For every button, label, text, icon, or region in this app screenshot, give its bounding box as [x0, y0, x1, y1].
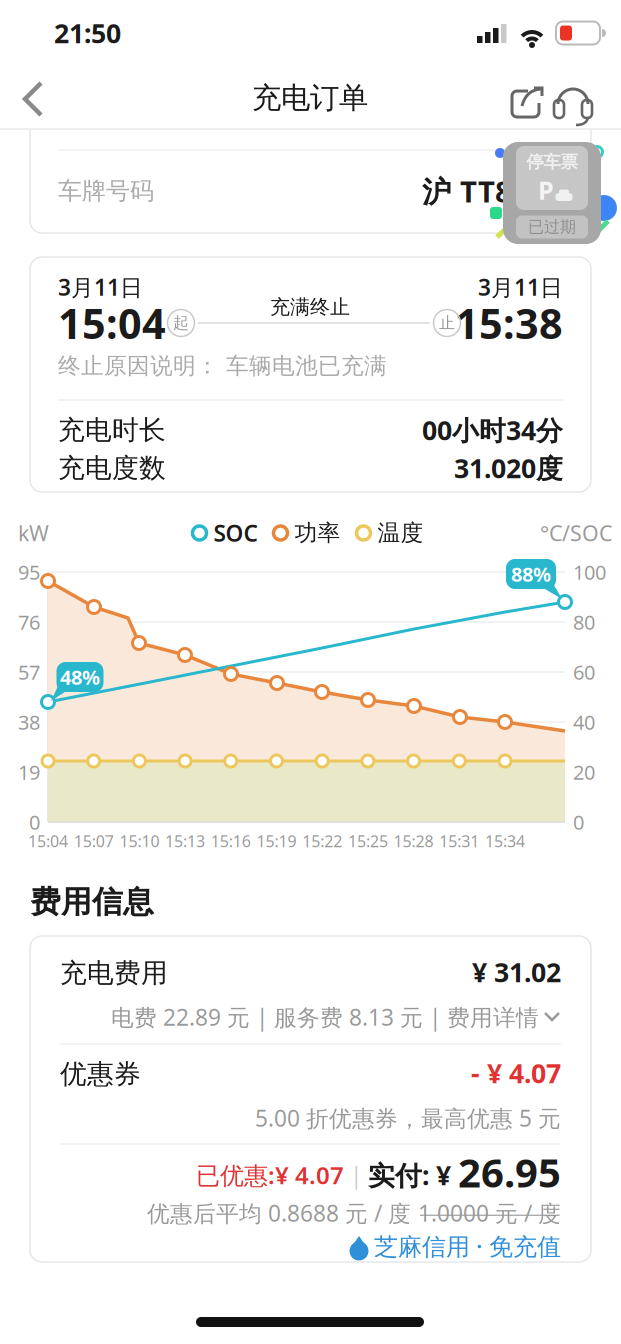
staticText: 80 — [573, 609, 595, 635]
staticText: P — [538, 173, 554, 207]
staticText: 温度 — [377, 519, 423, 547]
staticText: 充电度数 — [58, 452, 166, 484]
staticText: 0 — [573, 809, 584, 835]
button[interactable] — [3, 69, 63, 129]
staticText: 优惠后平均 0.8688 元 / 度 — [147, 1198, 418, 1228]
staticText: 停车票 — [526, 151, 577, 173]
staticText: 26.95 — [458, 1145, 561, 1198]
staticText: 19 — [18, 759, 40, 785]
staticText: 充电时长 — [58, 414, 166, 446]
staticText: 费用信息 — [30, 883, 154, 921]
staticText: 48% — [60, 664, 100, 690]
staticText: 起 — [173, 313, 189, 333]
staticText: 已优惠:¥ 4.07 — [196, 1159, 344, 1191]
button[interactable]: 芝麻信用 · 免充值 — [60, 1227, 561, 1265]
staticText: °C/SOC — [540, 519, 612, 547]
staticText: ¥ 31.02 — [472, 954, 561, 990]
staticText: 优惠券 — [60, 1058, 141, 1090]
staticText: 实付: ¥ — [368, 1157, 458, 1193]
button[interactable]: 车牌号码 — [58, 152, 563, 230]
staticText: 15:10 — [119, 830, 159, 852]
staticText: SOC — [213, 518, 257, 548]
staticText: 60 — [573, 659, 595, 685]
staticText: 0 — [29, 809, 40, 835]
staticText: 沪 TT8888 — [422, 171, 563, 210]
staticText: 57 — [18, 659, 40, 685]
staticText: 3月11日 — [58, 272, 143, 302]
staticText: 充满终止 — [270, 295, 350, 319]
button[interactable] — [545, 75, 601, 131]
staticText: 15:25 — [348, 830, 388, 852]
staticText: 充电费用 — [60, 957, 168, 989]
staticText: 电费 22.89 元 | 服务费 8.13 元 | 费用详情 — [111, 1002, 539, 1032]
staticText: - ¥ 4.07 — [471, 1055, 561, 1091]
staticText: 15:16 — [211, 830, 251, 852]
staticText: 15:38 — [455, 296, 563, 350]
staticText: 已过期 — [528, 217, 576, 237]
staticText: 芝麻信用 · 免充值 — [374, 1230, 561, 1262]
staticText: 15:22 — [302, 830, 342, 852]
staticText: 充电订单 — [252, 80, 368, 116]
staticText: 38 — [18, 709, 40, 735]
staticText: 15:04 — [28, 830, 68, 852]
button[interactable]: 电费 22.89 元 | 服务费 8.13 元 | 费用详情 — [60, 999, 561, 1035]
staticText: 15:28 — [394, 830, 434, 852]
staticText: 88% — [511, 561, 551, 587]
staticText: 15:07 — [74, 830, 114, 852]
button[interactable] — [499, 74, 555, 130]
staticText: 功率 — [294, 519, 340, 547]
staticText: | — [344, 1160, 368, 1190]
staticText: 15:31 — [439, 830, 479, 852]
staticText: kW — [18, 519, 49, 547]
staticText: 76 — [18, 609, 40, 635]
staticText: 31.020度 — [454, 450, 563, 486]
staticText: 止 — [439, 313, 455, 333]
staticText: 终止原因说明： 车辆电池已充满 — [58, 352, 387, 380]
staticText: 3月11日 — [478, 272, 563, 302]
staticText: 20 — [573, 759, 595, 785]
staticText: 15:04 — [58, 296, 166, 350]
staticText: 15:13 — [165, 830, 205, 852]
staticText: 1.0000 元 / 度 — [418, 1198, 561, 1228]
staticText: 95 — [18, 559, 40, 585]
staticText: 5.00 折优惠券，最高优惠 5 元 — [255, 1103, 561, 1133]
staticText: 车牌号码 — [58, 176, 154, 206]
staticText: 15:19 — [256, 830, 296, 852]
staticText: 100 — [573, 559, 606, 585]
staticText: 00小时34分 — [422, 412, 563, 448]
staticText: 15:34 — [485, 830, 525, 852]
staticText: 21:50 — [54, 15, 121, 51]
staticText: 40 — [573, 709, 595, 735]
